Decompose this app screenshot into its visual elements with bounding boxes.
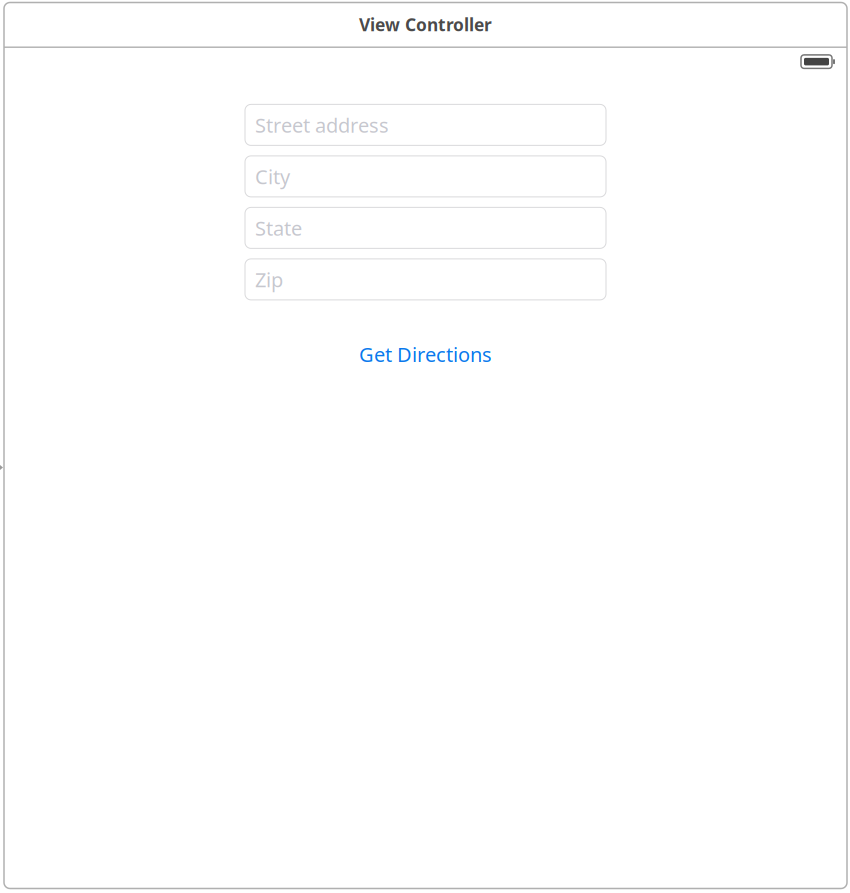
staticText: Zip (255, 266, 283, 293)
button[interactable]: Get Directions (359, 341, 492, 367)
staticText: View Controller (359, 13, 492, 36)
button[interactable]: State (245, 207, 606, 248)
button[interactable]: Zip (245, 259, 606, 300)
button[interactable]: Street address (245, 104, 606, 145)
staticText: City (255, 163, 290, 190)
button[interactable]: City (245, 156, 606, 197)
staticText: Get Directions (359, 341, 492, 367)
staticText: State (255, 215, 302, 241)
staticText: Street address (255, 112, 389, 138)
